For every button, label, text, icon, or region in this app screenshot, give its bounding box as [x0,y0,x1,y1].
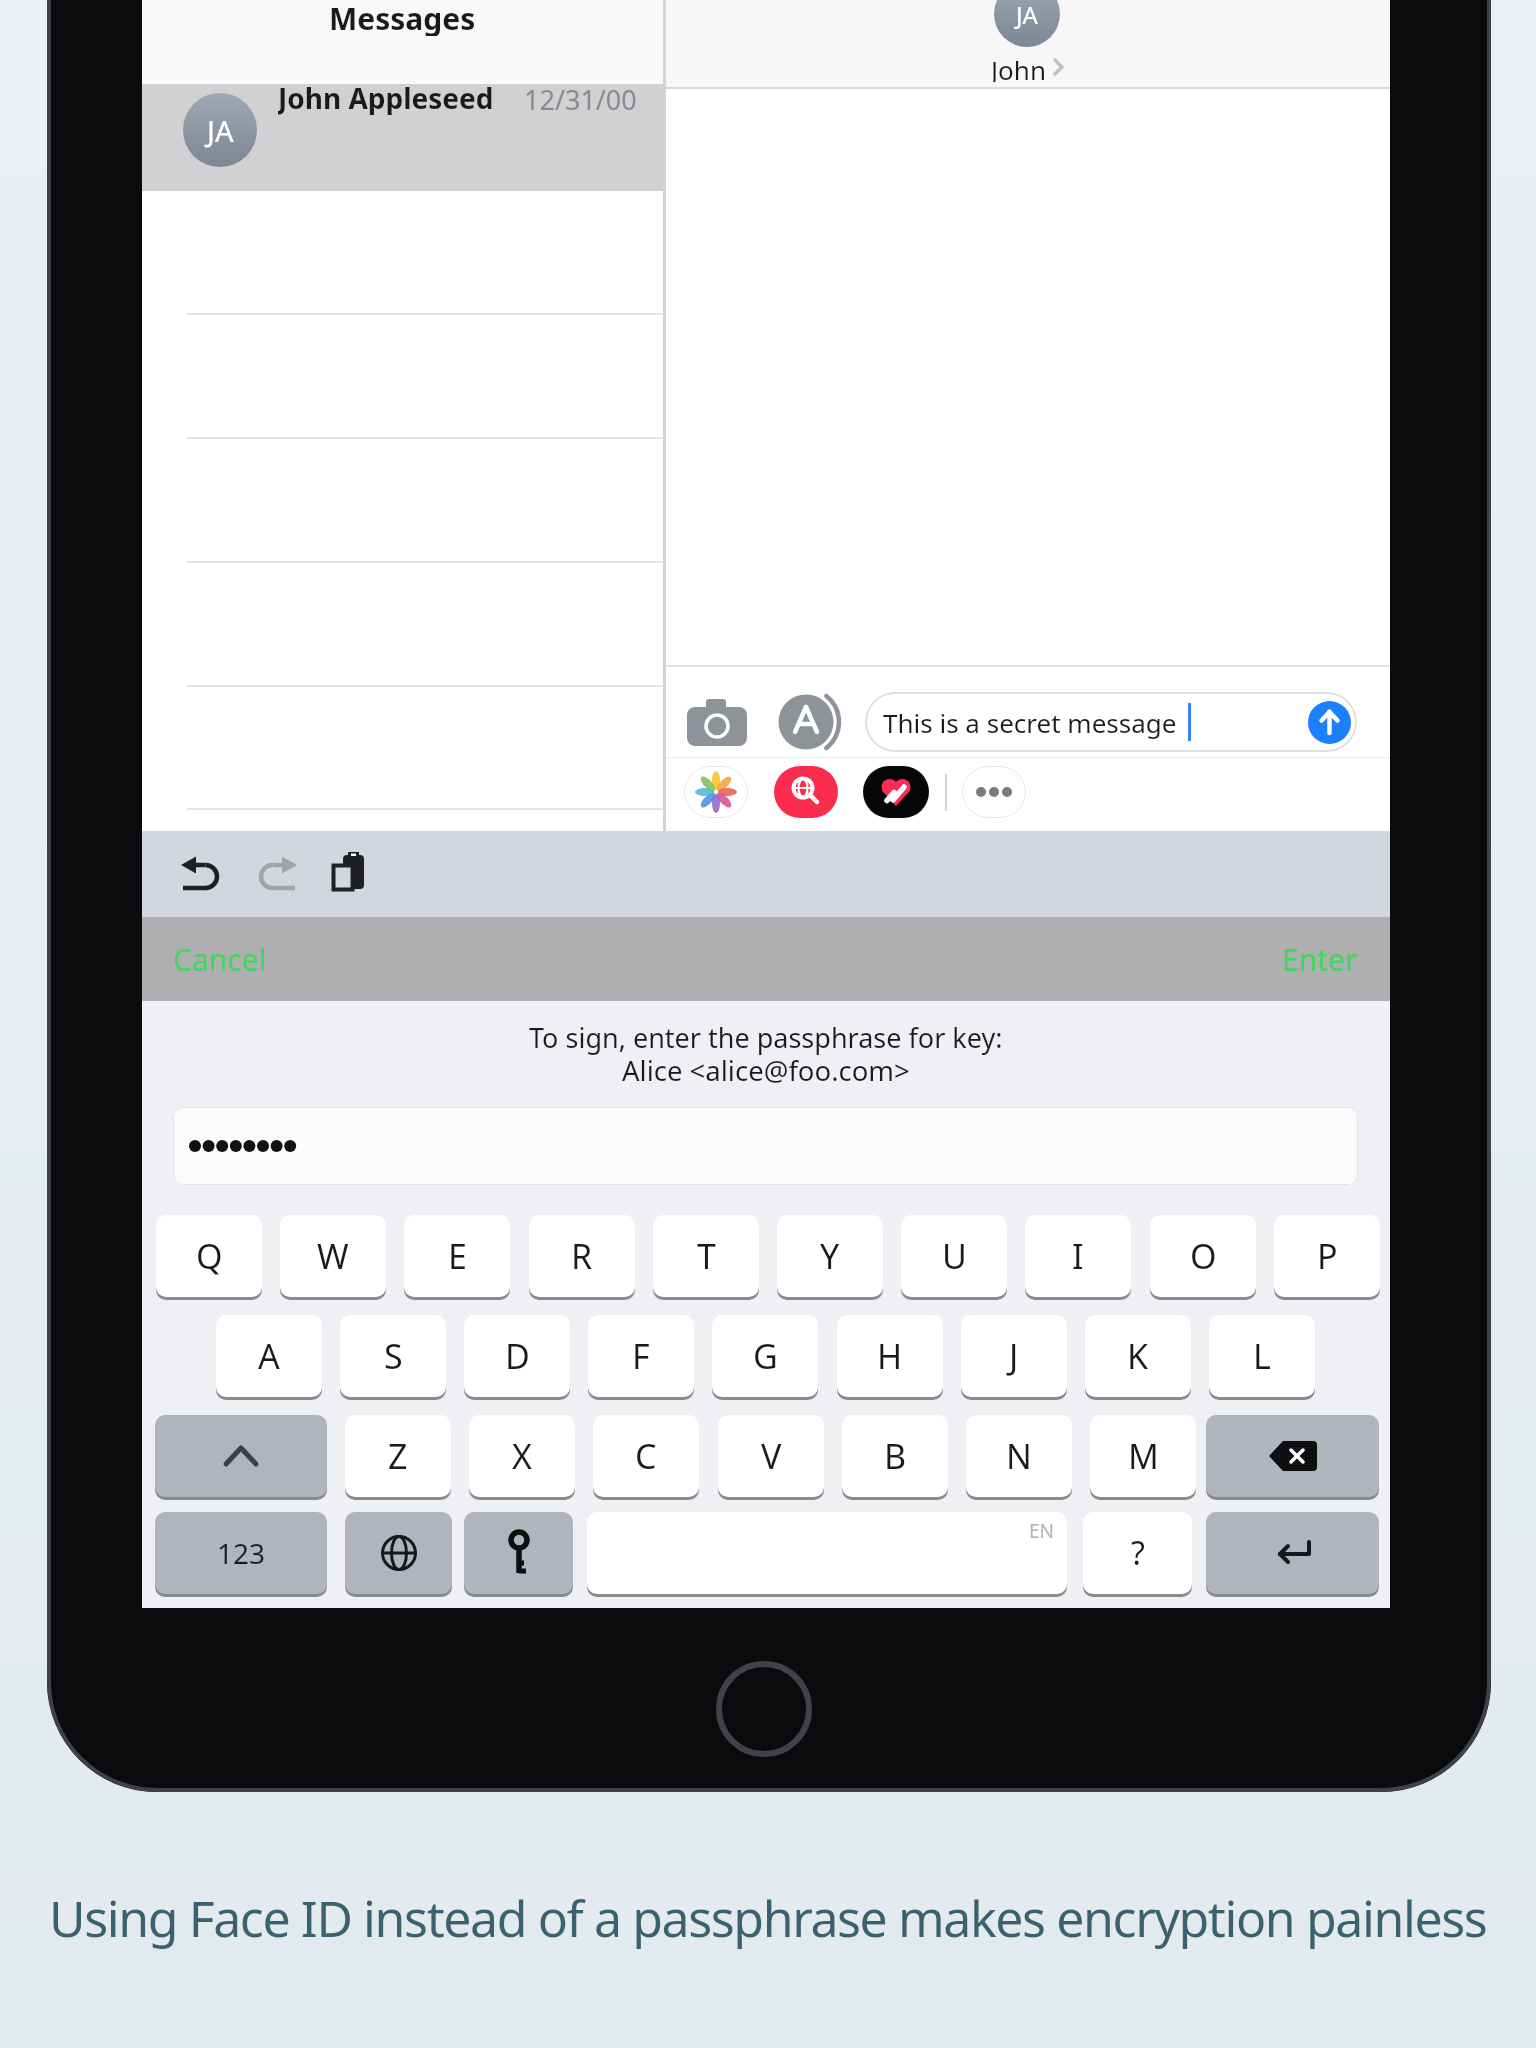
button[interactable]: A [216,1315,322,1397]
staticText: Messages [329,0,476,36]
staticText: JA [207,111,234,150]
button[interactable] [345,1512,452,1594]
button[interactable] [464,1512,573,1594]
staticText: E [448,1233,467,1279]
staticText: Cancel [173,939,267,980]
staticText: G [753,1333,778,1379]
button[interactable] [774,766,838,818]
button[interactable]: M [1090,1415,1196,1497]
staticText: Using Face ID instead of a passphrase ma… [49,1884,1487,1952]
staticText: John Appleseed [278,79,494,115]
button[interactable]: N [966,1415,1072,1497]
button[interactable] [863,766,929,818]
staticText: L [1253,1333,1271,1379]
staticText: B [884,1433,907,1479]
button[interactable] [1206,1512,1379,1594]
button[interactable]: U [901,1215,1007,1297]
staticText: N [1006,1433,1032,1479]
staticText: Alice <alice@foo.com> [622,1052,910,1086]
button[interactable]: F [588,1315,694,1397]
button[interactable]: X [469,1415,575,1497]
staticText: Enter [1282,939,1358,980]
button[interactable]: R [529,1215,635,1297]
staticText: J [1009,1333,1019,1379]
staticText: R [571,1233,593,1279]
staticText: EN [1029,1518,1055,1544]
button[interactable]: EN [587,1512,1067,1594]
button[interactable]: C [593,1415,699,1497]
button[interactable] [770,686,850,758]
button[interactable] [330,852,370,894]
staticText: U [942,1233,967,1279]
button[interactable]: Y [777,1215,883,1297]
button[interactable] [865,692,1357,752]
button[interactable] [155,1415,327,1497]
button[interactable]: D [464,1315,570,1397]
button[interactable] [1206,1415,1379,1497]
staticText: Z [388,1433,408,1479]
staticText: Q [196,1233,223,1279]
button[interactable]: T [653,1215,759,1297]
staticText: F [632,1333,650,1379]
staticText: K [1127,1333,1149,1379]
staticText: O [1190,1233,1217,1279]
button[interactable]: P [1274,1215,1380,1297]
staticText: P [1317,1233,1338,1279]
staticText: D [505,1333,530,1379]
staticText: H [877,1333,903,1379]
staticText: JA [1016,0,1038,31]
button[interactable] [252,855,298,893]
button[interactable] [142,84,663,191]
staticText: ? [1131,1531,1145,1575]
button[interactable] [1308,701,1351,744]
button[interactable]: L [1209,1315,1315,1397]
button[interactable]: I [1025,1215,1131,1297]
staticText: V [761,1433,782,1479]
staticText: M [1128,1433,1159,1479]
button[interactable]: Z [345,1415,451,1497]
button[interactable]: O [1150,1215,1256,1297]
button[interactable]: 123 [155,1512,327,1594]
staticText: A [258,1333,280,1379]
staticText: This is a secret message [883,705,1177,740]
staticText: W [317,1233,349,1279]
staticText: S [384,1333,403,1379]
button[interactable]: ? [1083,1512,1192,1594]
staticText: I [1072,1233,1084,1279]
staticText: 12/31/00 [524,81,637,113]
staticText: To sign, enter the passphrase for key: [529,1019,1003,1055]
button[interactable]: S [340,1315,446,1397]
button[interactable]: Cancel [162,935,332,983]
button[interactable]: H [837,1315,943,1397]
staticText: C [635,1433,657,1479]
button[interactable] [684,766,748,818]
staticText: John [991,52,1046,82]
button[interactable] [687,698,747,746]
button[interactable]: K [1085,1315,1191,1397]
button[interactable]: B [842,1415,948,1497]
button[interactable]: W [280,1215,386,1297]
button[interactable] [173,1107,1358,1185]
button[interactable]: J [961,1315,1067,1397]
button[interactable] [962,766,1026,818]
button[interactable]: G [712,1315,818,1397]
button[interactable]: Enter [1208,935,1368,983]
staticText: X [512,1433,532,1479]
button[interactable]: Q [156,1215,262,1297]
staticText: 123 [217,1534,266,1572]
button[interactable] [180,855,226,893]
button[interactable]: E [404,1215,510,1297]
staticText: Y [820,1233,840,1279]
staticText: T [697,1233,716,1279]
button[interactable]: V [718,1415,824,1497]
